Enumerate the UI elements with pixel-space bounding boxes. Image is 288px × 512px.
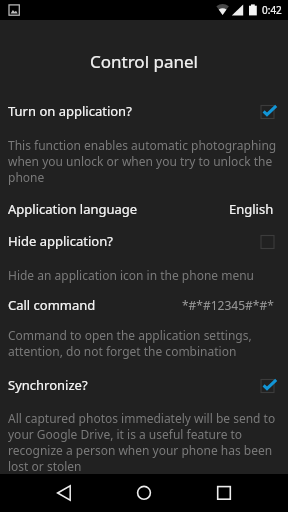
button[interactable]: Call command bbox=[0, 296, 288, 316]
button[interactable]: Synchronize? bbox=[0, 376, 288, 396]
staticText: Command to open the application settings… bbox=[8, 327, 281, 359]
button[interactable]: Turn on application? bbox=[0, 102, 288, 122]
button[interactable]: Back bbox=[34, 474, 94, 512]
staticText: 0:42 bbox=[262, 3, 282, 17]
staticText: Hide an application icon in the phone me… bbox=[8, 267, 281, 283]
staticText: All captured photos immediately will be … bbox=[8, 410, 281, 474]
staticText: Application language bbox=[8, 200, 229, 218]
staticText: Control panel bbox=[90, 50, 198, 73]
staticText: Hide application? bbox=[8, 232, 256, 250]
button[interactable]: Application language bbox=[0, 200, 288, 220]
staticText: English bbox=[229, 200, 274, 218]
staticText: Turn on application? bbox=[8, 102, 256, 120]
button[interactable]: Home bbox=[114, 474, 174, 512]
staticText: Synchronize? bbox=[8, 376, 256, 394]
staticText: Call command bbox=[8, 296, 182, 314]
button[interactable]: Hide application? bbox=[0, 232, 288, 252]
button[interactable]: Recent apps bbox=[194, 474, 254, 512]
staticText: This function enables automatic photogra… bbox=[8, 137, 281, 185]
staticText: *#*#12345#*#* bbox=[182, 297, 274, 313]
